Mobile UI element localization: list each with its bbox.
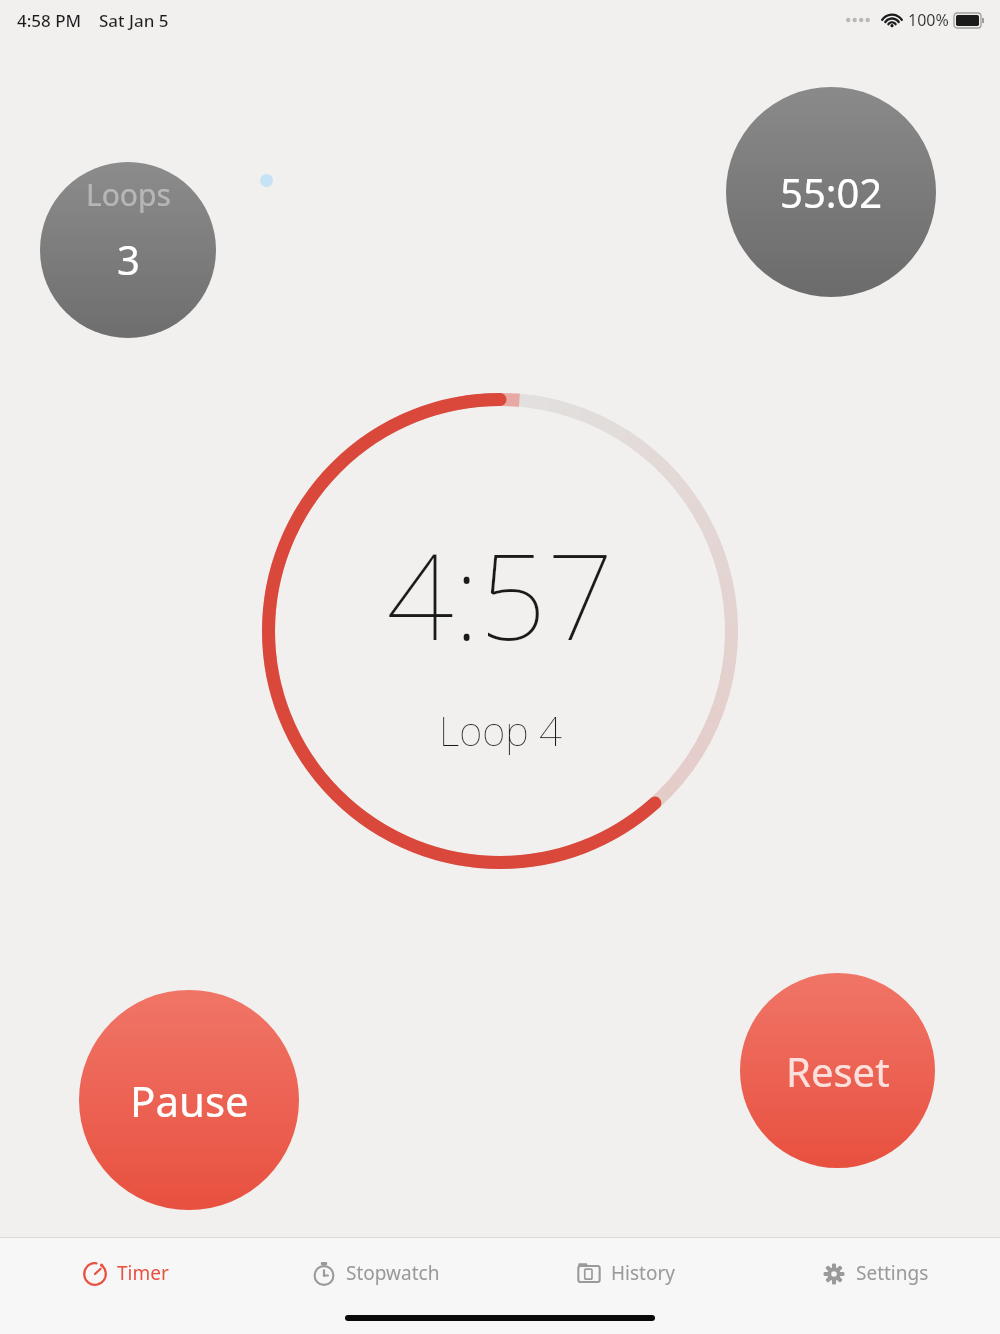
staticText: 100% [908, 9, 949, 31]
staticText: Reset [786, 1044, 890, 1098]
button[interactable]: History [500, 1238, 750, 1308]
staticText: Loops [86, 174, 171, 215]
staticText: History [611, 1260, 675, 1286]
staticText: Timer [117, 1260, 169, 1286]
staticText: 4:57 [386, 514, 614, 675]
staticText: Loop 4 [439, 703, 562, 757]
staticText: Stopwatch [346, 1260, 440, 1286]
button[interactable]: Stopwatch [250, 1238, 500, 1308]
button[interactable]: Settings [750, 1238, 1000, 1308]
staticText: 3 [117, 232, 140, 286]
staticText: Settings [856, 1260, 929, 1286]
button[interactable]: 4:57 [256, 387, 744, 875]
button[interactable]: Loops [40, 162, 216, 338]
staticText: Pause [130, 1072, 249, 1129]
staticText: 4:58 PM [17, 9, 82, 32]
staticText: Sat Jan 5 [99, 9, 169, 32]
button[interactable]: Timer [0, 1238, 250, 1308]
button[interactable]: Reset [740, 973, 935, 1168]
staticText: 55:02 [780, 165, 883, 219]
button[interactable]: 55:02 [726, 87, 936, 297]
button[interactable]: Pause [79, 990, 299, 1210]
